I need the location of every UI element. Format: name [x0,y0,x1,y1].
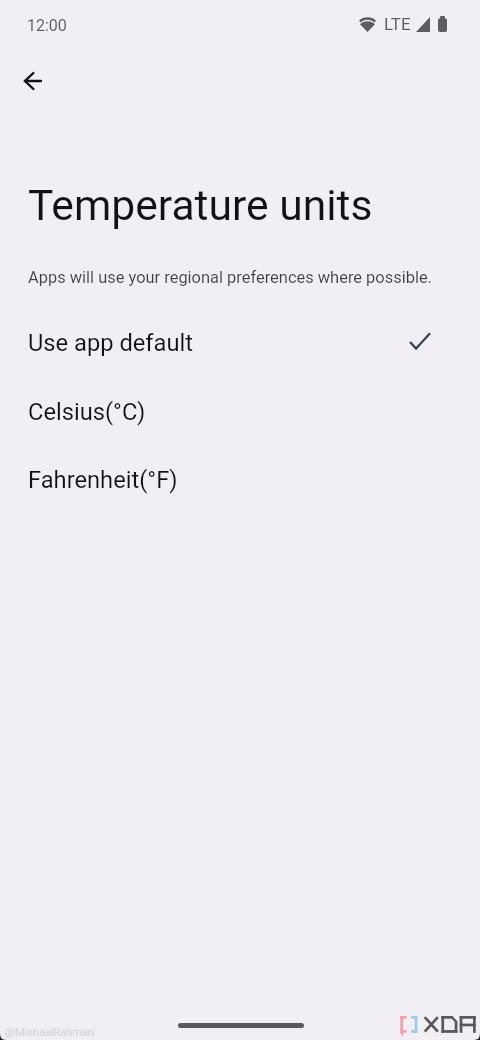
button[interactable]: Fahrenheit(°F) [0,441,480,509]
staticText: Fahrenheit(°F) [28,466,178,494]
staticText: Use app default [28,329,193,357]
staticText: Apps will use your regional preferences … [28,268,432,287]
staticText: Celsius(°C) [28,398,146,426]
staticText: Temperature units [28,180,373,230]
staticText: 12:00 [27,16,67,35]
button[interactable]: Use app default [0,304,480,372]
staticText: LTE [384,14,411,34]
staticText: @MishaalRahman [5,1026,95,1039]
button[interactable]: Celsius(°C) [0,373,480,441]
button[interactable]: Back [9,57,57,105]
